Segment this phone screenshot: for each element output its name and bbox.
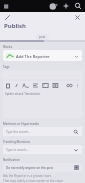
- button[interactable]: Type to search...: [3, 145, 82, 154]
- staticText: Ask the Reporter is a private room.: [3, 174, 52, 178]
- staticText: Trending Mentions: [3, 140, 31, 144]
- staticText: Type the search...: [6, 130, 31, 134]
- button[interactable]: Quote: [52, 82, 59, 89]
- button[interactable]: Add The Reporter: [3, 50, 82, 61]
- staticText: Type to search...: [6, 148, 29, 152]
- button[interactable]: Do not notify anyone on this post: [3, 163, 82, 172]
- other: Trending search: [73, 147, 79, 153]
- button[interactable]: Link: [66, 82, 73, 89]
- button[interactable]: Insert image: [42, 82, 49, 89]
- button[interactable]: Close: [74, 14, 81, 21]
- button[interactable]: post: [39, 35, 46, 39]
- button[interactable]: Menu: [3, 3, 10, 10]
- staticText: Notification: [3, 158, 20, 162]
- staticText: Tags: [3, 65, 10, 69]
- staticText: Add The Reporter: [16, 54, 50, 59]
- button[interactable]: Add new: [62, 2, 70, 10]
- button[interactable]: Text size: [22, 82, 29, 89]
- staticText: Blocks: [3, 45, 13, 49]
- staticText: Publish: [4, 22, 26, 30]
- button[interactable]: Align: [32, 82, 39, 89]
- other: Mention search: [73, 129, 79, 135]
- button[interactable]: Italic: [14, 83, 19, 88]
- button[interactable]: More options: [75, 83, 80, 88]
- button[interactable]: Edit: [4, 14, 11, 21]
- staticText: That may notify a room owner or the room…: [3, 179, 64, 183]
- button[interactable]: Spider attack Trendsetter: [3, 90, 82, 118]
- button[interactable]: Type the search...: [3, 127, 82, 136]
- button[interactable]: Account: [49, 2, 58, 11]
- button[interactable]: Search: [74, 2, 82, 10]
- staticText: post: [39, 35, 46, 39]
- button[interactable]: Bold: [5, 83, 11, 89]
- staticText: Mentions or Hypermedia: [3, 122, 39, 126]
- staticText: Spider attack Trendsetter: [5, 92, 41, 96]
- staticText: Do not notify anyone on this post: [6, 166, 53, 170]
